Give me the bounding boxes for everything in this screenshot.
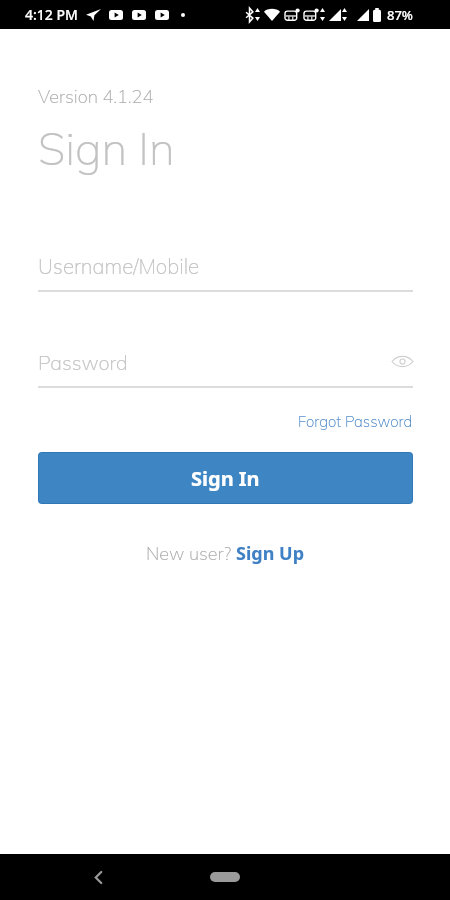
button[interactable]: Sign In	[39, 453, 412, 503]
button[interactable]: Forgot Password	[298, 412, 413, 431]
staticText: 87%	[387, 6, 413, 24]
staticText: Sign In	[38, 120, 175, 176]
staticText: Version 4.1.24	[38, 85, 154, 108]
button[interactable]: Sign Up	[236, 541, 305, 566]
staticText: New user?	[146, 542, 236, 565]
staticText: Password	[38, 350, 128, 375]
staticText: Sign In	[191, 465, 260, 492]
button[interactable]: Home	[210, 872, 240, 882]
staticText: 4:12 PM	[25, 5, 78, 24]
button[interactable]: Back	[82, 861, 114, 893]
staticText: Username/Mobile	[38, 253, 200, 279]
button[interactable]: Show password	[389, 348, 415, 374]
